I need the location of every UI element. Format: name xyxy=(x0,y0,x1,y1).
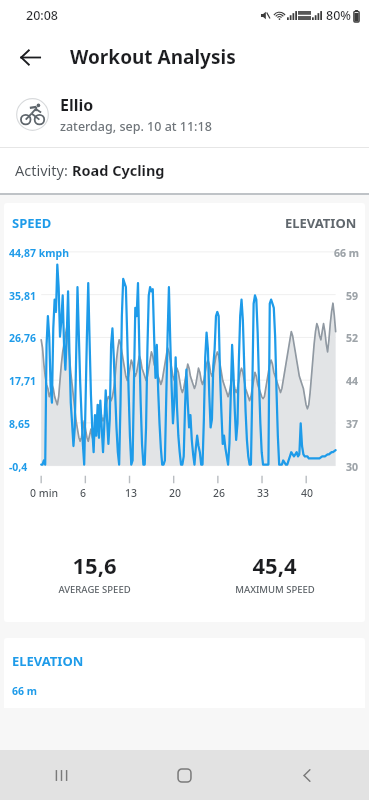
staticText: 80% xyxy=(326,7,351,24)
staticText: 26 xyxy=(213,486,226,500)
staticText: SPEED xyxy=(12,214,52,232)
button[interactable]: Recent apps xyxy=(0,750,123,800)
button[interactable]: 45,4 xyxy=(184,550,365,596)
staticText: AVERAGE SPEED xyxy=(58,583,131,596)
staticText: 45,4 xyxy=(252,550,297,580)
staticText: 66 m xyxy=(334,246,359,260)
staticText: ELEVATION xyxy=(285,214,357,232)
staticText: 44 xyxy=(346,374,359,388)
button[interactable]: Home xyxy=(123,750,246,800)
staticText: 0 min xyxy=(30,486,59,500)
staticText: 52 xyxy=(346,331,359,345)
staticText: 44,87 kmph xyxy=(9,246,69,260)
button[interactable]: 15,6 xyxy=(4,550,184,596)
staticText: Road Cycling xyxy=(72,160,165,180)
button[interactable]: Back xyxy=(8,35,52,79)
staticText: 35,81 xyxy=(9,289,37,303)
staticText: 26,76 xyxy=(9,331,37,345)
staticText: 17,71 xyxy=(9,374,37,388)
staticText: 66 m xyxy=(12,684,37,698)
staticText: 40 xyxy=(301,486,314,500)
staticText: 20 xyxy=(169,486,182,500)
staticText: MAXIMUM SPEED xyxy=(235,583,315,596)
staticText: 33 xyxy=(257,486,270,500)
staticText: 15,6 xyxy=(72,550,117,580)
staticText: 6 xyxy=(80,486,87,500)
staticText: 13 xyxy=(125,486,138,500)
staticText: 8,65 xyxy=(9,417,31,431)
staticText: zaterdag, sep. 10 at 11:18 xyxy=(60,118,212,135)
staticText: ELEVATION xyxy=(12,652,84,670)
staticText: 37 xyxy=(346,417,359,431)
button[interactable]: Activity: xyxy=(0,148,369,193)
staticText: Activity: xyxy=(15,160,72,180)
staticText: -0,4 xyxy=(9,460,28,474)
staticText: 20:08 xyxy=(26,7,59,24)
button[interactable]: Ellio xyxy=(0,84,369,147)
staticText: Workout Analysis xyxy=(70,44,236,70)
staticText: Ellio xyxy=(60,94,94,116)
staticText: 59 xyxy=(346,289,359,303)
staticText: 30 xyxy=(346,460,359,474)
button[interactable]: Back xyxy=(246,750,369,800)
